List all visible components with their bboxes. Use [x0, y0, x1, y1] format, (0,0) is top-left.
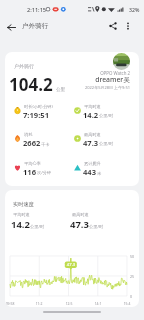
staticText: 米 [97, 171, 102, 176]
staticText: 2022年5月28日 上午9:51 [65, 85, 130, 90]
staticText: 2662 [23, 138, 41, 148]
staticText: 14.2 [83, 110, 99, 120]
staticText: 消耗 [24, 132, 33, 137]
staticText: 公里 [56, 87, 66, 93]
button[interactable]: 户外骑行 [5, 52, 139, 186]
staticText: 户外骑行 [14, 63, 34, 69]
staticText: 时长(小时:分钟) [24, 104, 53, 110]
staticText: OPPO Watch 2 [80, 70, 130, 76]
staticText: 104.2 [9, 73, 53, 96]
button[interactable]: 累计爬升 [74, 161, 134, 181]
staticText: 47.3 [83, 138, 99, 148]
staticText: 公里/时 [99, 113, 114, 119]
staticText: 公里/时 [30, 224, 45, 230]
staticText: 平均心率 [24, 161, 41, 166]
staticText: 2:11:15 [27, 6, 47, 14]
button[interactable]: More options [121, 19, 135, 33]
staticText: 09:58 [5, 301, 16, 306]
staticText: dreamer吴 [80, 75, 130, 84]
staticText: 14:1 [92, 301, 104, 306]
button[interactable]: Back [3, 19, 19, 35]
staticText: 公里/时 [99, 141, 114, 147]
staticText: 15:4 [121, 301, 133, 306]
button[interactable]: 时长(小时:分钟) [14, 104, 74, 124]
staticText: 户外骑行 [22, 22, 49, 30]
staticText: 累计爬升 [84, 161, 101, 166]
staticText: 12:5 [63, 301, 75, 306]
staticText: 14.2 [11, 218, 30, 231]
button[interactable]: Share [106, 19, 120, 33]
staticText: 47.3 [70, 218, 89, 231]
staticText: 32% [129, 6, 140, 13]
button[interactable]: 平均时速 [74, 104, 134, 124]
staticText: 最高时速 [72, 212, 89, 217]
button[interactable]: 消耗 [14, 132, 74, 152]
staticText: 平均时速 [84, 104, 101, 109]
staticText: 最高时速 [84, 132, 101, 137]
staticText: 116 [23, 167, 37, 177]
staticText: 千卡 [41, 142, 50, 147]
staticText: 7:19:51 [23, 110, 49, 120]
staticText: 11:2 [33, 301, 45, 306]
staticText: 0 [130, 294, 133, 299]
staticText: 25 [130, 274, 135, 279]
staticText: 平均时速 [13, 212, 30, 217]
staticText: 47.3 [65, 262, 77, 268]
staticText: 50 [130, 254, 135, 259]
staticText: 实时速度 [13, 201, 34, 208]
button[interactable]: 最高时速 [74, 132, 134, 152]
staticText: 公里/时 [89, 224, 104, 230]
staticText: 443 [83, 167, 97, 177]
staticText: 次/分钟 [37, 170, 52, 176]
button[interactable]: 平均心率 [14, 161, 74, 181]
